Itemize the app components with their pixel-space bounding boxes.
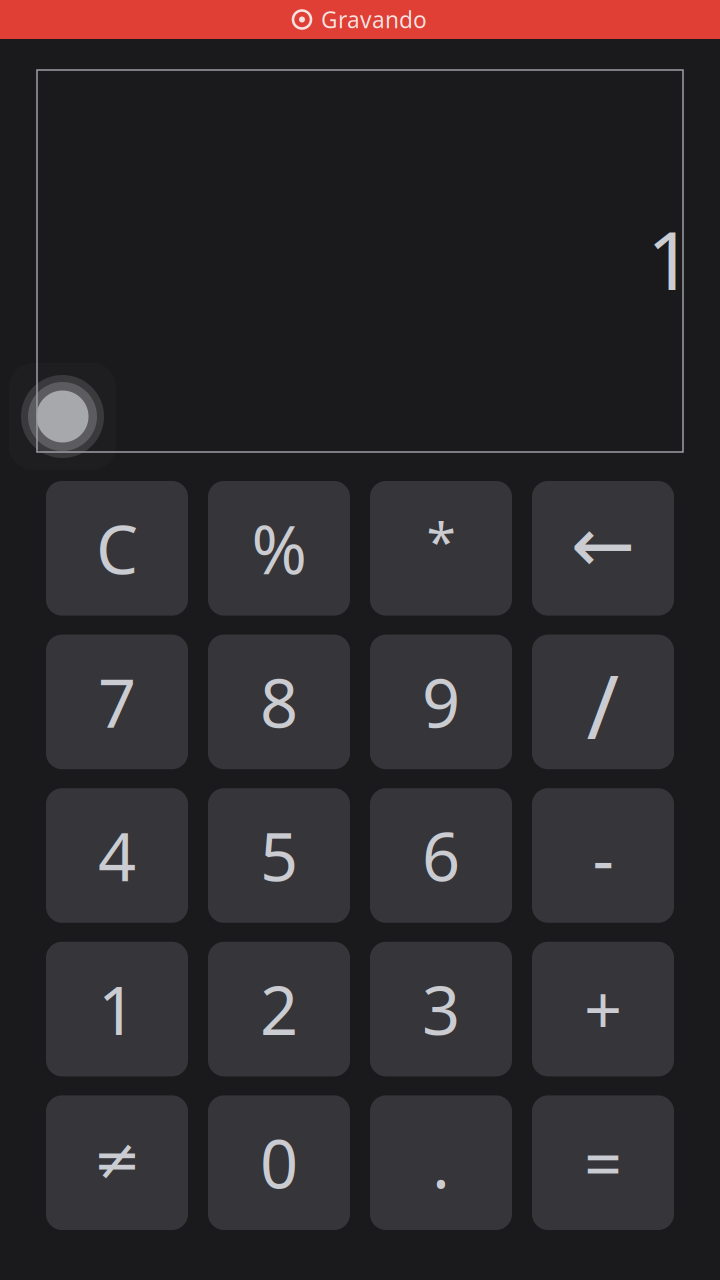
button[interactable]: 7: [46, 635, 188, 769]
staticText: 6: [422, 811, 460, 900]
button[interactable]: *: [370, 481, 512, 616]
staticText: 5: [260, 811, 298, 900]
staticText: ≠: [93, 1127, 141, 1192]
staticText: 0: [260, 1118, 298, 1207]
staticText: 4: [98, 811, 136, 900]
staticText: +: [584, 965, 622, 1053]
button[interactable]: 0: [208, 1095, 350, 1230]
button[interactable]: 4: [46, 788, 188, 923]
button[interactable]: /: [532, 635, 674, 769]
staticText: 8: [260, 658, 298, 746]
staticText: 7: [98, 658, 136, 746]
button[interactable]: -: [532, 788, 674, 923]
staticText: *: [426, 505, 455, 576]
button[interactable]: +: [532, 942, 674, 1076]
staticText: C: [96, 504, 138, 592]
staticText: 2: [260, 965, 298, 1053]
staticText: %: [251, 504, 306, 592]
button[interactable]: ≠: [46, 1095, 188, 1230]
staticText: 1: [647, 206, 693, 312]
staticText: .: [432, 1118, 450, 1207]
button[interactable]: 5: [208, 788, 350, 923]
staticText: -: [592, 814, 613, 903]
staticText: 3: [422, 965, 460, 1053]
staticText: =: [584, 1118, 622, 1207]
staticText: /: [586, 646, 619, 763]
button[interactable]: =: [532, 1095, 674, 1230]
staticText: 1: [98, 965, 136, 1053]
button[interactable]: 6: [370, 788, 512, 923]
staticText: Gravando: [321, 4, 427, 34]
button[interactable]: 9: [370, 635, 512, 769]
staticText: ←: [570, 501, 635, 589]
button[interactable]: 2: [208, 942, 350, 1076]
button[interactable]: 1: [46, 942, 188, 1076]
button[interactable]: .: [370, 1095, 512, 1230]
staticText: 9: [422, 658, 460, 746]
button[interactable]: 8: [208, 635, 350, 769]
button[interactable]: ←: [532, 481, 674, 616]
button[interactable]: %: [208, 481, 350, 616]
button[interactable]: C: [46, 481, 188, 616]
button[interactable]: 3: [370, 942, 512, 1076]
